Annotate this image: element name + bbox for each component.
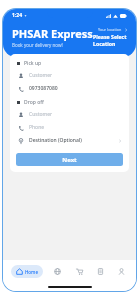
button[interactable]: Home	[11, 265, 43, 278]
staticText: Pick up	[24, 60, 42, 67]
staticText: Please Select Location	[93, 33, 128, 47]
staticText: Home	[25, 269, 38, 275]
button[interactable]: Cart	[73, 265, 86, 278]
staticText: Customer	[29, 72, 53, 79]
button[interactable]: Orders	[94, 265, 107, 278]
button[interactable]: 0973087080	[16, 84, 123, 93]
staticText: Your location	[98, 27, 122, 32]
button[interactable]: Customer	[16, 71, 123, 80]
button[interactable]: Phone	[16, 123, 123, 132]
staticText: 1:24	[12, 12, 22, 19]
button[interactable]: Explore	[51, 265, 64, 278]
staticText: Phone	[29, 124, 45, 131]
staticText: 0973087080	[29, 85, 58, 92]
staticText: PHSAR Express	[12, 26, 93, 41]
button[interactable]: Profile	[115, 265, 128, 278]
staticText: Next	[62, 156, 77, 164]
button[interactable]: Your location	[93, 26, 128, 47]
button[interactable]: Next	[16, 153, 123, 166]
button[interactable]: Customer	[16, 110, 123, 119]
staticText: Drop off	[24, 99, 44, 106]
staticText: Book your delivery now!	[12, 42, 63, 48]
button[interactable]: Destination (Optional)	[16, 136, 123, 145]
staticText: Customer	[29, 111, 53, 118]
staticText: Destination (Optional)	[29, 137, 82, 144]
